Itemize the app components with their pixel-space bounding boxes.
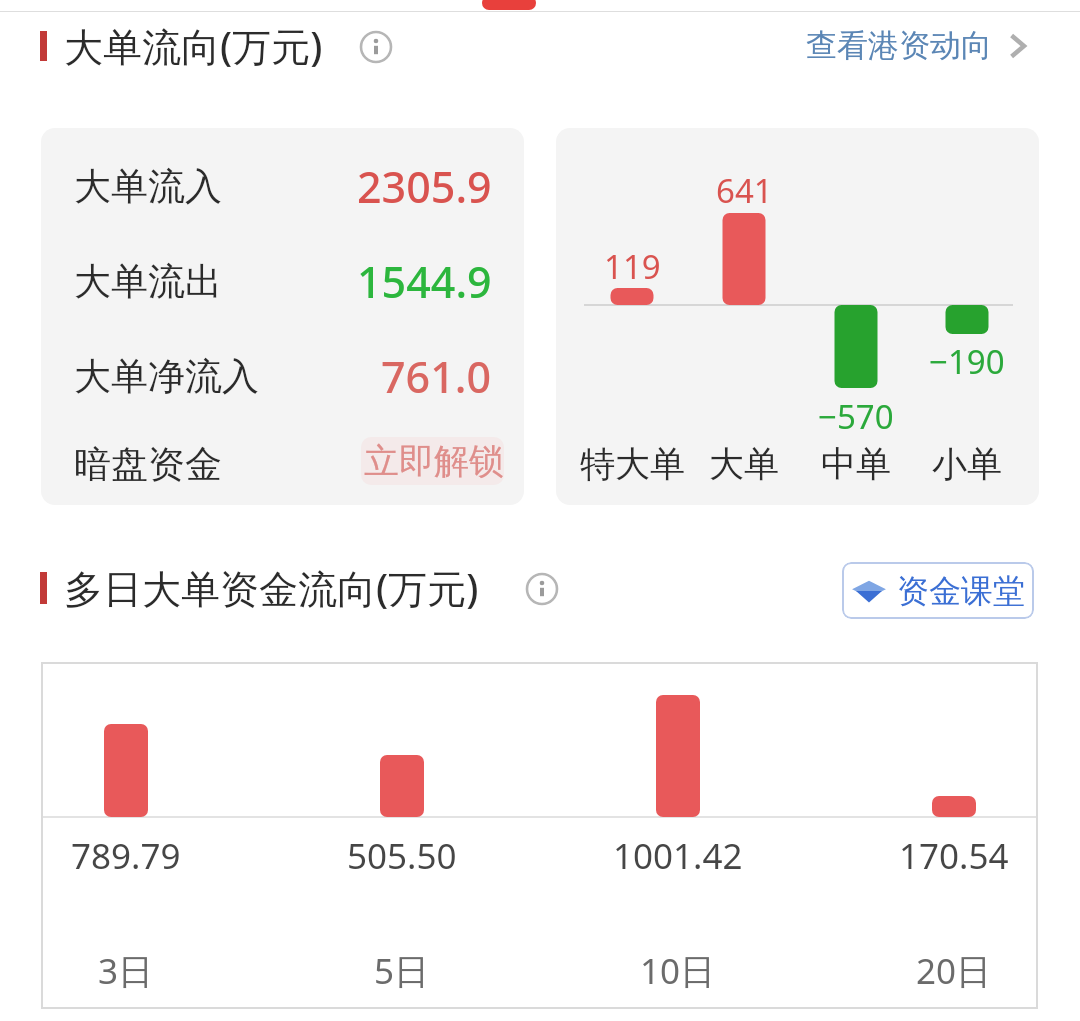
staticText: 2305.9 <box>357 157 492 216</box>
staticText: 505.50 <box>347 832 457 880</box>
staticText: 查看港资动向 <box>806 26 992 65</box>
button[interactable]: 资金课堂 <box>842 562 1034 619</box>
staticText: 大单流入 <box>74 163 222 210</box>
button[interactable]: 大单流向说明 <box>358 29 394 65</box>
staticText: 119 <box>604 244 661 289</box>
staticText: 大单流向(万元) <box>64 19 323 72</box>
staticText: 1544.9 <box>357 252 492 311</box>
button[interactable]: 立即解锁 <box>361 433 504 489</box>
staticText: 多日大单资金流向(万元) <box>64 561 479 614</box>
button[interactable]: 119 <box>556 128 1039 505</box>
staticText: 170.54 <box>899 832 1009 880</box>
staticText: 5日 <box>374 947 430 995</box>
staticText: 3日 <box>98 947 154 995</box>
staticText: 中单 <box>821 442 891 486</box>
staticText: 大单流出 <box>74 258 222 305</box>
button[interactable]: 查看港资动向 <box>800 18 1034 73</box>
button[interactable]: 多日大单资金流向说明 <box>524 571 560 607</box>
staticText: 小单 <box>932 442 1002 486</box>
staticText: −190 <box>929 339 1005 384</box>
staticText: 1001.42 <box>613 832 743 880</box>
staticText: 789.79 <box>71 832 181 880</box>
staticText: 641 <box>716 168 773 213</box>
staticText: 立即解锁 <box>364 439 504 483</box>
staticText: 大单 <box>709 442 779 486</box>
staticText: 20日 <box>916 947 992 995</box>
staticText: −570 <box>818 394 894 439</box>
button[interactable]: 789.79 <box>41 662 1038 1009</box>
staticText: 761.0 <box>381 347 492 406</box>
staticText: 特大单 <box>580 442 685 486</box>
staticText: 10日 <box>640 947 716 995</box>
button[interactable]: 大单流入 <box>41 128 524 505</box>
staticText: 大单净流入 <box>74 353 259 400</box>
staticText: 资金课堂 <box>897 571 1025 611</box>
staticText: 暗盘资金 <box>74 441 222 488</box>
